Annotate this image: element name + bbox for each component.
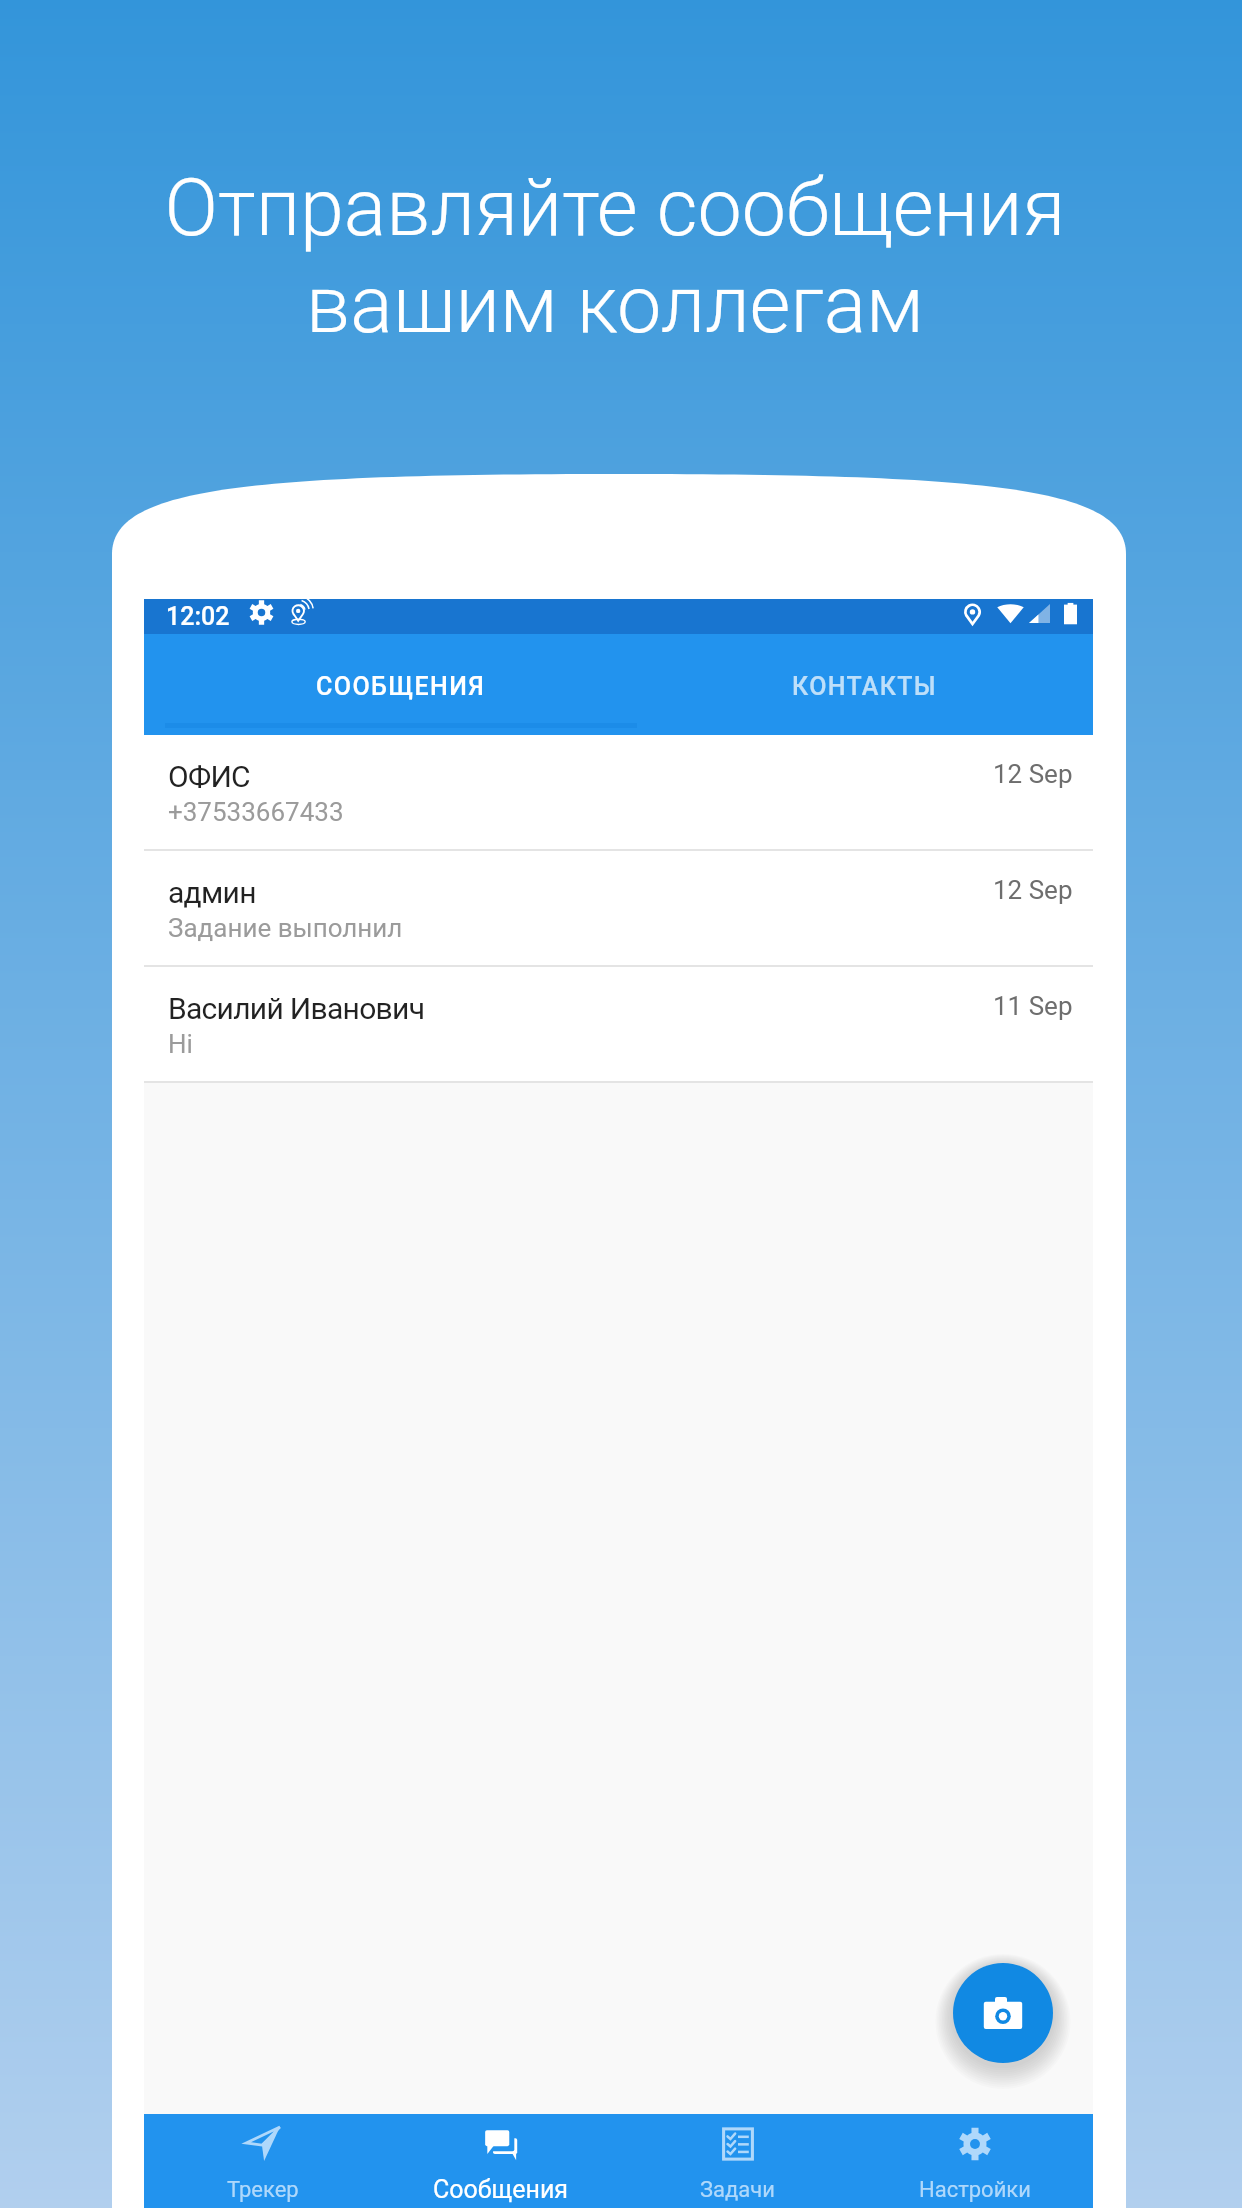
staticText: СООБЩЕНИЯ <box>316 672 486 701</box>
staticText: 12 Sep <box>993 875 1073 905</box>
staticText: 11 Sep <box>993 991 1073 1021</box>
button[interactable]: Настройки <box>856 2114 1093 2208</box>
button[interactable]: админ <box>144 851 1093 967</box>
staticText: админ <box>168 875 256 910</box>
staticText: Настройки <box>919 2177 1031 2203</box>
button[interactable]: Василий Иванович <box>144 967 1093 1083</box>
button[interactable]: Задачи <box>619 2114 856 2208</box>
staticText: Задание выполнил <box>168 913 403 943</box>
staticText: Hi <box>168 1029 193 1059</box>
button[interactable]: ОФИС <box>144 735 1093 851</box>
button[interactable]: КОНТАКТЫ <box>637 639 1093 734</box>
staticText: Отправляйте сообщения вашим коллегам <box>0 162 1236 351</box>
button[interactable]: Сообщения <box>382 2114 619 2208</box>
staticText: Трекер <box>227 2177 299 2203</box>
staticText: КОНТАКТЫ <box>792 672 938 701</box>
staticText: Задачи <box>700 2177 775 2203</box>
staticText: ОФИС <box>168 759 250 794</box>
staticText: Василий Иванович <box>168 991 425 1026</box>
button[interactable]: Take photo <box>939 1949 1067 2077</box>
button[interactable]: Трекер <box>144 2114 382 2208</box>
button[interactable]: СООБЩЕНИЯ <box>165 639 637 734</box>
staticText: +37533667433 <box>168 797 344 827</box>
staticText: 12:02 <box>166 602 230 631</box>
staticText: Сообщения <box>433 2175 569 2204</box>
staticText: 12 Sep <box>993 759 1073 789</box>
